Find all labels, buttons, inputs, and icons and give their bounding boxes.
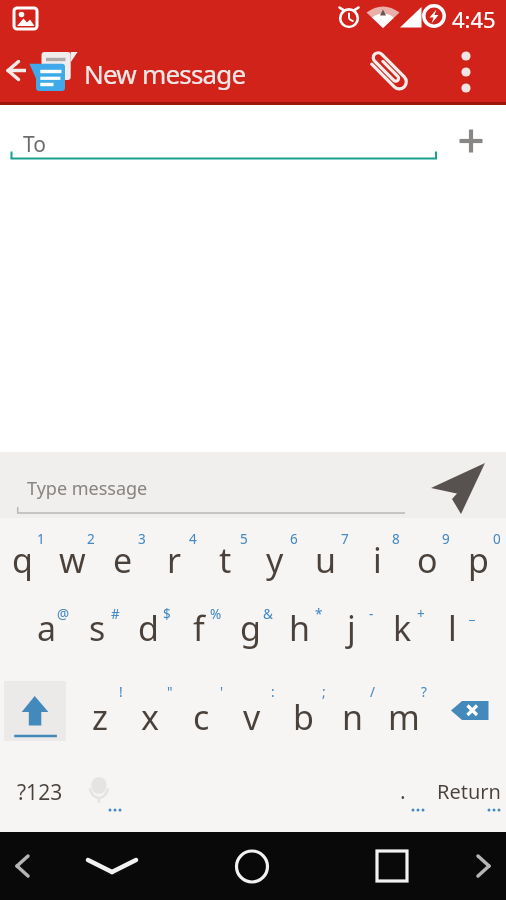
staticText: @ — [57, 605, 70, 623]
staticText: c — [193, 694, 210, 740]
staticText: b — [293, 694, 314, 740]
button[interactable]: 2 — [47, 518, 97, 584]
button[interactable]: + — [377, 586, 427, 652]
staticText: n — [342, 694, 364, 740]
button[interactable] — [440, 688, 500, 738]
staticText: v — [243, 694, 261, 740]
button[interactable]: " — [125, 676, 175, 742]
button[interactable]: : — [227, 676, 277, 742]
button[interactable]: @ — [22, 586, 72, 652]
staticText: + — [417, 605, 425, 623]
button[interactable] — [420, 457, 500, 515]
staticText: ! — [119, 683, 123, 701]
staticText: 6 — [290, 530, 298, 548]
staticText: _ — [469, 605, 475, 623]
staticText: 4:45 — [452, 4, 496, 34]
staticText: r — [167, 537, 182, 583]
staticText: a — [37, 605, 57, 651]
button[interactable] — [355, 842, 430, 892]
button[interactable]: 1 — [0, 518, 47, 584]
button[interactable]: 7 — [301, 518, 351, 584]
staticText: 7 — [341, 530, 349, 548]
staticText: 2 — [87, 530, 95, 548]
staticText: u — [315, 537, 337, 583]
button[interactable]: ' — [176, 676, 226, 742]
staticText: d — [138, 605, 159, 651]
staticText: " — [167, 683, 173, 701]
staticText: : — [271, 683, 275, 701]
staticText: p — [468, 537, 489, 583]
button[interactable]: ?123 — [17, 778, 63, 807]
button[interactable]: & — [225, 586, 275, 652]
button[interactable]: Return — [437, 778, 501, 805]
staticText: f — [193, 605, 205, 651]
staticText: Type message — [27, 476, 148, 501]
staticText: * — [315, 605, 323, 623]
button[interactable]: 6 — [250, 518, 300, 584]
staticText: / — [370, 683, 376, 701]
staticText: To — [23, 130, 46, 159]
staticText: z — [92, 694, 108, 740]
staticText: l — [448, 605, 457, 651]
button[interactable]: % — [174, 586, 224, 652]
staticText: i — [373, 537, 382, 583]
staticText: y — [266, 537, 284, 583]
staticText: ; — [322, 683, 326, 701]
button[interactable]: / — [328, 676, 378, 742]
button[interactable]: * — [275, 586, 325, 652]
staticText: 9 — [442, 530, 450, 548]
staticText: 8 — [392, 530, 400, 548]
staticText: m — [388, 694, 420, 740]
button[interactable]: - — [326, 586, 376, 652]
button[interactable]: ! — [75, 676, 125, 742]
staticText: 1 — [37, 530, 45, 548]
staticText: o — [417, 537, 438, 583]
button[interactable] — [80, 842, 150, 892]
button[interactable]: ? — [379, 676, 429, 742]
button[interactable]: . — [400, 777, 406, 806]
staticText: % — [210, 605, 222, 623]
staticText: t — [219, 537, 232, 583]
staticText: - — [369, 605, 374, 623]
staticText: ' — [220, 683, 224, 701]
staticText: # — [111, 605, 120, 623]
staticText: h — [289, 605, 311, 651]
button[interactable]: 5 — [200, 518, 250, 584]
button[interactable]: $ — [123, 586, 173, 652]
staticText: q — [12, 537, 33, 583]
button[interactable] — [440, 45, 500, 100]
button[interactable]: 3 — [98, 518, 148, 584]
staticText: 5 — [240, 530, 248, 548]
button[interactable] — [80, 768, 120, 813]
button[interactable]: New message — [84, 56, 246, 91]
button[interactable] — [4, 681, 66, 741]
button[interactable] — [0, 50, 34, 94]
button[interactable]: 9 — [402, 518, 452, 584]
staticText: 3 — [138, 530, 146, 548]
button[interactable]: 4 — [149, 518, 199, 584]
staticText: 0 — [493, 530, 501, 548]
staticText: g — [240, 605, 261, 651]
button[interactable]: ; — [278, 676, 328, 742]
button[interactable]: _ — [427, 586, 477, 652]
staticText: $ — [163, 605, 171, 623]
staticText: k — [393, 605, 412, 651]
button[interactable]: To — [0, 105, 506, 170]
staticText: w — [59, 537, 86, 583]
button[interactable]: 0 — [453, 518, 503, 584]
staticText: ? — [421, 683, 427, 701]
staticText: s — [89, 605, 106, 651]
button[interactable]: # — [72, 586, 122, 652]
button[interactable]: 8 — [352, 518, 402, 584]
button[interactable] — [215, 842, 290, 892]
staticText: e — [113, 537, 133, 583]
button[interactable] — [360, 45, 420, 100]
staticText: j — [347, 605, 356, 651]
staticText: 4 — [189, 530, 197, 548]
staticText: x — [141, 694, 159, 740]
staticText: & — [263, 605, 273, 623]
